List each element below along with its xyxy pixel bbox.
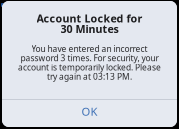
staticText: try again at 03:13 PM. [47,71,132,82]
staticText: Account Locked for [36,11,142,25]
staticText: password 3 times. For security, your [20,52,158,64]
staticText: OK [81,104,97,119]
staticText: You have entered an incorrect [31,43,147,54]
staticText: account is temporarily locked. Please [18,61,161,73]
button[interactable]: OK [2,100,177,127]
staticText: 30 Minutes [60,21,118,36]
